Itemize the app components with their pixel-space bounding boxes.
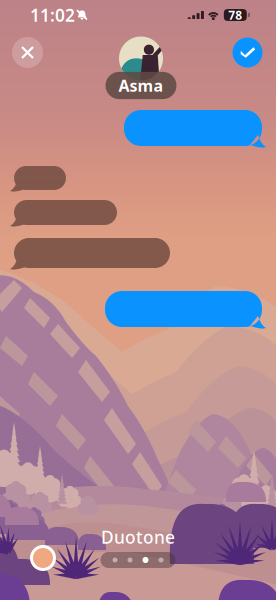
staticText: 78 (228, 7, 242, 23)
staticText: 11:02 (30, 3, 75, 26)
staticText: Asma (118, 75, 163, 96)
button[interactable]: Colour (26, 541, 60, 575)
staticText: Duotone (101, 525, 175, 548)
button[interactable]: Cancel (7, 32, 47, 72)
button[interactable]: Done (227, 32, 267, 72)
